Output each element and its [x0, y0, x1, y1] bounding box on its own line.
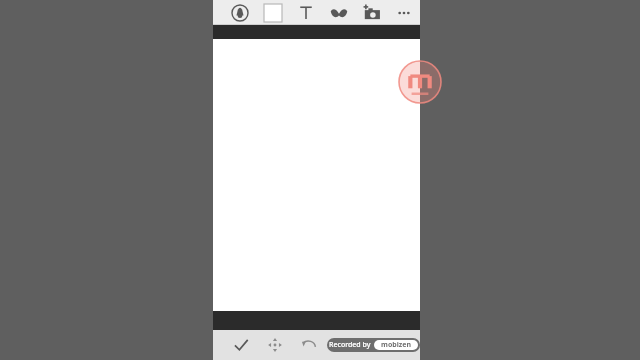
button[interactable]: Text [289, 0, 322, 25]
button[interactable]: Recorded by [327, 338, 420, 352]
button[interactable]: Shape [256, 0, 289, 25]
button[interactable]: Add photo [355, 0, 388, 25]
button[interactable]: More options [388, 0, 420, 25]
button[interactable]: Move [261, 330, 289, 360]
staticText: Recorded by [329, 340, 371, 350]
button[interactable]: Brush [223, 0, 256, 25]
staticText: mobizen [381, 340, 411, 350]
button[interactable]: Sticker [322, 0, 355, 25]
button[interactable]: Undo [295, 330, 323, 360]
button[interactable]: Confirm [227, 330, 255, 360]
